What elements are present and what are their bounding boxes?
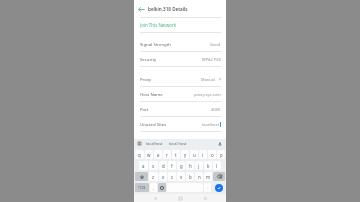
button[interactable]: Backspace [213,172,225,181]
staticText: e [157,152,160,158]
button[interactable]: Home [176,194,184,202]
staticText: localhost [202,122,219,127]
button[interactable]: local host [168,141,188,146]
button[interactable]: w [145,150,153,159]
staticText: a [142,163,145,169]
staticText: Unused Sites [140,121,167,127]
button[interactable]: f [168,161,176,170]
button[interactable]: Shift [135,172,148,181]
button[interactable]: x [159,172,167,181]
button[interactable]: Enter [212,183,225,192]
button[interactable]: m [204,172,212,181]
staticText: s [152,163,155,169]
staticText: y [184,152,187,158]
button[interactable]: Clipboard [137,141,142,146]
staticText: Signal Strength [140,41,171,47]
staticText: p [220,152,223,158]
button[interactable]: d [159,161,167,170]
staticText: Security [140,56,157,62]
button[interactable]: r [163,150,171,159]
staticText: localhost [146,141,163,146]
staticText: j [198,163,200,169]
button[interactable]: c [168,172,176,181]
button[interactable]: Emoji [158,183,166,192]
button[interactable]: Recent apps [201,194,209,202]
staticText: i [202,152,204,158]
staticText: o [211,152,214,158]
button[interactable]: e [154,150,162,159]
button[interactable]: Back [134,2,148,16]
button[interactable]: Security [134,52,226,66]
button[interactable]: Signal Strength [134,37,226,51]
button[interactable]: Host Name [134,87,226,101]
button[interactable]: , [150,183,157,192]
staticText: 4080 [211,107,221,112]
button[interactable]: l [213,161,221,170]
staticText: proxy.xyz.com [194,92,221,97]
staticText: Join This Network [140,22,177,28]
button[interactable]: localhost [145,141,164,146]
button[interactable]: h [186,161,194,170]
button[interactable]: n [195,172,203,181]
staticText: f [171,163,173,169]
staticText: c [171,174,174,180]
staticText: v [180,174,183,180]
staticText: Manual [201,77,216,82]
staticText: t [175,152,177,158]
staticText: r [166,152,168,158]
staticText: , [153,185,155,191]
button[interactable]: p [217,150,225,159]
staticText: z [152,174,155,180]
staticText: WPA2 PSK [202,57,221,62]
button[interactable]: . [204,183,211,192]
button[interactable]: y [181,150,189,159]
button[interactable]: Back [151,194,159,202]
staticText: d [162,163,165,169]
staticText: x [162,174,165,180]
staticText: ?123 [138,185,146,190]
button[interactable]: j [195,161,203,170]
button[interactable]: Port [134,102,226,116]
button[interactable]: o [208,150,216,159]
button[interactable]: b [186,172,194,181]
staticText: w [147,152,151,158]
button[interactable]: ?123 [135,183,149,192]
button[interactable]: v [177,172,185,181]
staticText: b [189,174,192,180]
staticText: Good [210,42,221,47]
staticText: u [193,152,196,158]
button[interactable]: u [190,150,198,159]
staticText: n [198,174,201,180]
button[interactable]: s [149,161,158,170]
button[interactable]: Proxy [134,72,226,86]
button[interactable]: t [172,150,180,159]
button[interactable]: Voice input [217,141,223,147]
staticText: . [207,185,209,191]
button[interactable]: g [177,161,185,170]
staticText: local host [169,141,187,146]
staticText: l [216,163,218,169]
button[interactable]: z [149,172,158,181]
staticText: Port [140,106,149,112]
button[interactable]: a [139,161,148,170]
button[interactable]: k [204,161,212,170]
staticText: m [206,174,211,180]
button[interactable]: q [135,150,144,159]
staticText: h [189,163,192,169]
staticText: q [138,152,141,158]
staticText: k [207,163,210,169]
staticText: g [180,163,183,169]
staticText: belkin.318 Details [148,6,188,12]
button[interactable]: i [199,150,207,159]
staticText: Host Name [140,91,163,97]
staticText: Proxy [140,76,152,82]
button[interactable]: Join This Network [134,18,226,32]
button[interactable]: Unused Sites [134,117,226,131]
